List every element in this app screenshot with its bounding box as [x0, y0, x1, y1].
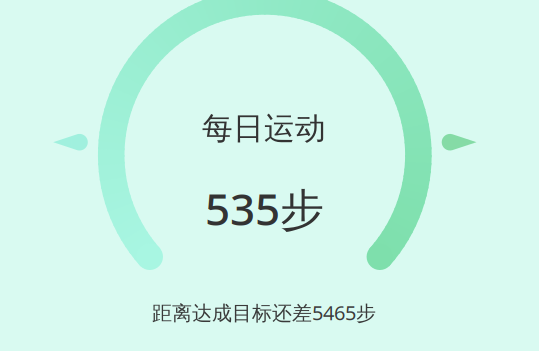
staticText: 每日运动 [202, 110, 326, 147]
staticText: 535步 [205, 179, 324, 238]
staticText: 距离达成目标还差5465步 [152, 299, 376, 326]
